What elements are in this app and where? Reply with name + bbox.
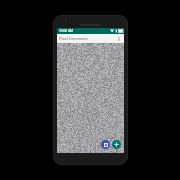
button[interactable]: Generate new pixels — [112, 140, 121, 149]
button[interactable]: More options — [115, 35, 122, 42]
button[interactable]: Save image — [101, 140, 110, 149]
staticText: Pixel Generator — [59, 36, 115, 41]
staticText: 10:00 AM — [59, 29, 74, 33]
